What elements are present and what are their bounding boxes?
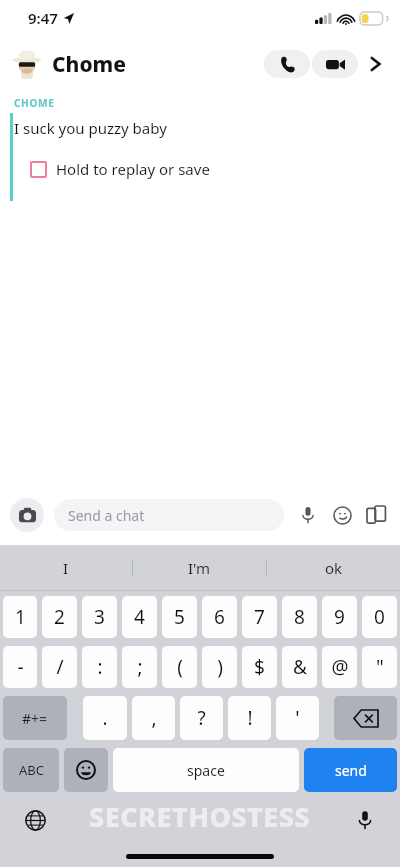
button[interactable]: Camera bbox=[10, 498, 44, 532]
button[interactable]: " bbox=[362, 646, 397, 688]
button[interactable]: , bbox=[132, 696, 175, 740]
button[interactable]: ! bbox=[228, 696, 271, 740]
staticText: space bbox=[187, 761, 225, 780]
button[interactable]: $ bbox=[242, 646, 277, 688]
staticText: ! bbox=[247, 705, 253, 731]
staticText: Hold to replay or save bbox=[56, 159, 210, 179]
staticText: ' bbox=[295, 705, 300, 731]
button[interactable]: . bbox=[83, 696, 127, 740]
staticText: send bbox=[335, 761, 367, 780]
staticText: : bbox=[97, 654, 103, 680]
staticText: 9:47 bbox=[28, 8, 58, 28]
staticText: 8 bbox=[294, 604, 305, 630]
button[interactable]: ( bbox=[162, 646, 197, 688]
button[interactable]: @ bbox=[322, 646, 357, 688]
button[interactable]: ) bbox=[202, 646, 237, 688]
staticText: I'm bbox=[188, 558, 211, 578]
button[interactable]: Stickers bbox=[328, 501, 356, 529]
button[interactable]: 9 bbox=[322, 596, 357, 638]
staticText: " bbox=[376, 654, 384, 680]
staticText: I suck you puzzy baby bbox=[14, 118, 167, 138]
staticText: SECRETHOSTESS bbox=[89, 798, 311, 835]
staticText: #+= bbox=[22, 709, 48, 728]
staticText: & bbox=[293, 654, 307, 680]
button[interactable]: - bbox=[3, 646, 37, 688]
staticText: 0 bbox=[374, 604, 385, 630]
staticText: 4 bbox=[134, 604, 145, 630]
staticText: 1 bbox=[15, 604, 26, 630]
staticText: - bbox=[17, 654, 24, 680]
staticText: / bbox=[56, 654, 64, 680]
button[interactable]: Hold to replay or save bbox=[30, 159, 210, 179]
button[interactable]: & bbox=[282, 646, 317, 688]
staticText: I bbox=[63, 558, 69, 578]
button[interactable]: Voice note bbox=[294, 501, 322, 529]
button[interactable]: ? bbox=[180, 696, 223, 740]
button[interactable]: Backspace bbox=[334, 696, 397, 740]
button[interactable]: 8 bbox=[282, 596, 317, 638]
staticText: ? bbox=[197, 705, 206, 731]
button[interactable]: space bbox=[113, 748, 299, 792]
staticText: ; bbox=[137, 654, 143, 680]
button[interactable]: ABC bbox=[3, 748, 59, 792]
staticText: $ bbox=[254, 654, 265, 680]
button[interactable]: 6 bbox=[202, 596, 237, 638]
staticText: ok bbox=[325, 558, 343, 578]
button[interactable]: 0 bbox=[362, 596, 397, 638]
button[interactable]: 1 bbox=[3, 596, 37, 638]
staticText: @ bbox=[331, 654, 349, 680]
staticText: Chome bbox=[52, 50, 127, 79]
button[interactable]: 7 bbox=[242, 596, 277, 638]
button[interactable]: Gallery bbox=[362, 501, 390, 529]
button[interactable]: 4 bbox=[122, 596, 157, 638]
staticText: Send a chat bbox=[68, 506, 145, 525]
button[interactable]: 3 bbox=[82, 596, 117, 638]
staticText: 5 bbox=[174, 604, 185, 630]
staticText: 2 bbox=[54, 604, 65, 630]
staticText: CHOME bbox=[14, 96, 55, 110]
button[interactable]: : bbox=[82, 646, 117, 688]
button[interactable]: 5 bbox=[162, 596, 197, 638]
button[interactable]: Voice input bbox=[352, 807, 378, 833]
staticText: 7 bbox=[254, 604, 265, 630]
button[interactable]: ; bbox=[122, 646, 157, 688]
button[interactable]: Chome bbox=[12, 49, 127, 79]
button[interactable]: send bbox=[304, 748, 397, 792]
staticText: ( bbox=[177, 654, 183, 680]
button[interactable]: ' bbox=[276, 696, 319, 740]
staticText: 6 bbox=[214, 604, 225, 630]
button[interactable]: Emoji bbox=[64, 748, 108, 792]
staticText: ABC bbox=[19, 761, 44, 779]
button[interactable]: I bbox=[0, 545, 132, 590]
staticText: 3 bbox=[94, 604, 105, 630]
button[interactable]: / bbox=[42, 646, 77, 688]
staticText: 9 bbox=[334, 604, 345, 630]
staticText: ) bbox=[217, 654, 223, 680]
button[interactable]: Video call bbox=[312, 50, 358, 78]
button[interactable]: 2 bbox=[42, 596, 77, 638]
button[interactable]: ok bbox=[267, 545, 400, 590]
button[interactable]: #+= bbox=[3, 696, 67, 740]
button[interactable]: Call bbox=[264, 50, 310, 78]
staticText: , bbox=[151, 705, 157, 731]
button[interactable]: More bbox=[358, 47, 392, 81]
button[interactable]: I'm bbox=[133, 545, 266, 590]
staticText: . bbox=[102, 705, 108, 731]
button[interactable]: Change keyboard language bbox=[22, 807, 48, 833]
button[interactable]: Send a chat bbox=[54, 499, 284, 531]
